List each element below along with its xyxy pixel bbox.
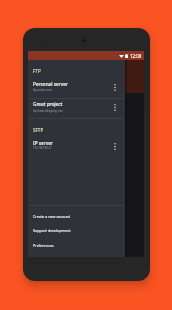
- button[interactable]: [28, 78, 125, 98]
- staticText: 12:00: [130, 53, 142, 59]
- button[interactable]: [28, 136, 125, 156]
- staticText: Personal server: [33, 81, 113, 87]
- staticText: FTP: [33, 68, 41, 74]
- staticText: ftp.theworldisgoing.com: [33, 109, 113, 113]
- staticText: IP server: [33, 140, 113, 146]
- staticText: ftp.private.com: [33, 88, 113, 92]
- button[interactable]: More options: [109, 139, 120, 153]
- button[interactable]: More options: [109, 80, 120, 94]
- button[interactable]: More options: [109, 100, 120, 114]
- staticText: Create a new account: [33, 214, 71, 219]
- staticText: Preferences: [33, 243, 54, 248]
- button[interactable]: [28, 98, 125, 118]
- staticText: Great project: [33, 101, 113, 107]
- button[interactable]: [28, 223, 125, 237]
- button[interactable]: [28, 209, 125, 223]
- staticText: SFTP: [33, 127, 44, 133]
- button[interactable]: [28, 237, 125, 251]
- staticText: Support development: [33, 228, 71, 233]
- staticText: 192.168.300.27: [33, 146, 113, 150]
